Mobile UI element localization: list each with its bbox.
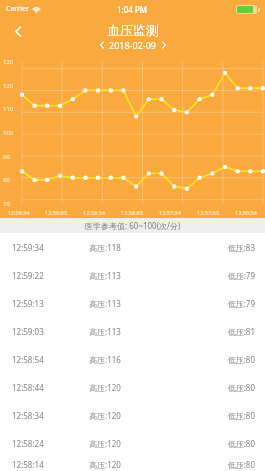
staticText: 100 [3,129,14,137]
staticText: 12:59:34 [0,209,37,216]
staticText: 高压:118 [89,242,177,253]
button[interactable]: 12:59:03 [0,317,265,345]
staticText: 12:56:34 [227,209,265,216]
staticText: 高压:120 [89,459,177,470]
staticText: 12:58:34 [12,410,89,421]
staticText: 高压:120 [89,410,177,421]
staticText: 低压:79 [177,270,255,281]
staticText: 110 [3,105,14,113]
staticText: 12:58:34 [75,209,113,216]
staticText: 2018-02-09 [109,39,156,51]
staticText: 医学参考值: 60~100(次/分) [85,220,181,231]
button[interactable]: Next day [156,37,171,52]
button[interactable]: 12:58:54 [0,345,265,373]
staticText: 70 [3,200,10,208]
staticText: 120 [3,82,14,90]
staticText: 12:58:44 [12,382,89,393]
staticText: 90 [3,153,10,161]
staticText: 低压:80 [177,459,255,470]
staticText: 低压:80 [177,354,255,365]
button[interactable]: 12:59:34 [0,233,265,261]
staticText: 高压:116 [89,354,177,365]
staticText: 高压:113 [89,298,177,309]
button[interactable]: Back [3,18,33,44]
staticText: 高压:120 [89,382,177,393]
staticText: 12:58:54 [12,354,89,365]
staticText: 高压:120 [89,438,177,449]
staticText: 12:58:03 [113,209,151,216]
button[interactable]: 12:58:24 [0,429,265,457]
staticText: 低压:80 [177,382,255,393]
staticText: 低压:80 [177,410,255,421]
staticText: 12:57:34 [151,209,189,216]
staticText: 12:59:03 [12,326,89,337]
staticText: 12:59:22 [12,270,89,281]
staticText: 低压:81 [177,326,255,337]
staticText: 12:57:03 [189,209,227,216]
button[interactable]: 12:59:22 [0,261,265,289]
button[interactable]: Previous day [94,37,109,52]
staticText: 12:59:34 [12,242,89,253]
staticText: 12:58:14 [12,459,89,470]
staticText: 12:59:13 [12,298,89,309]
staticText: 低压:79 [177,298,255,309]
staticText: Carrier [6,4,29,14]
staticText: 12:59:03 [37,209,75,216]
staticText: 血压监测 [107,22,159,38]
staticText: 80 [3,176,10,184]
staticText: 高压:113 [89,270,177,281]
button[interactable]: 12:58:44 [0,373,265,401]
staticText: 高压:113 [89,326,177,337]
staticText: 1:04 PM [117,4,148,15]
button[interactable]: 12:59:13 [0,289,265,317]
button[interactable]: 12:58:34 [0,401,265,429]
button[interactable]: 12:58:14 [0,457,265,471]
staticText: 130 [3,58,14,66]
staticText: 12:58:24 [12,438,89,449]
staticText: 低压:80 [177,438,255,449]
staticText: 低压:83 [177,242,255,253]
